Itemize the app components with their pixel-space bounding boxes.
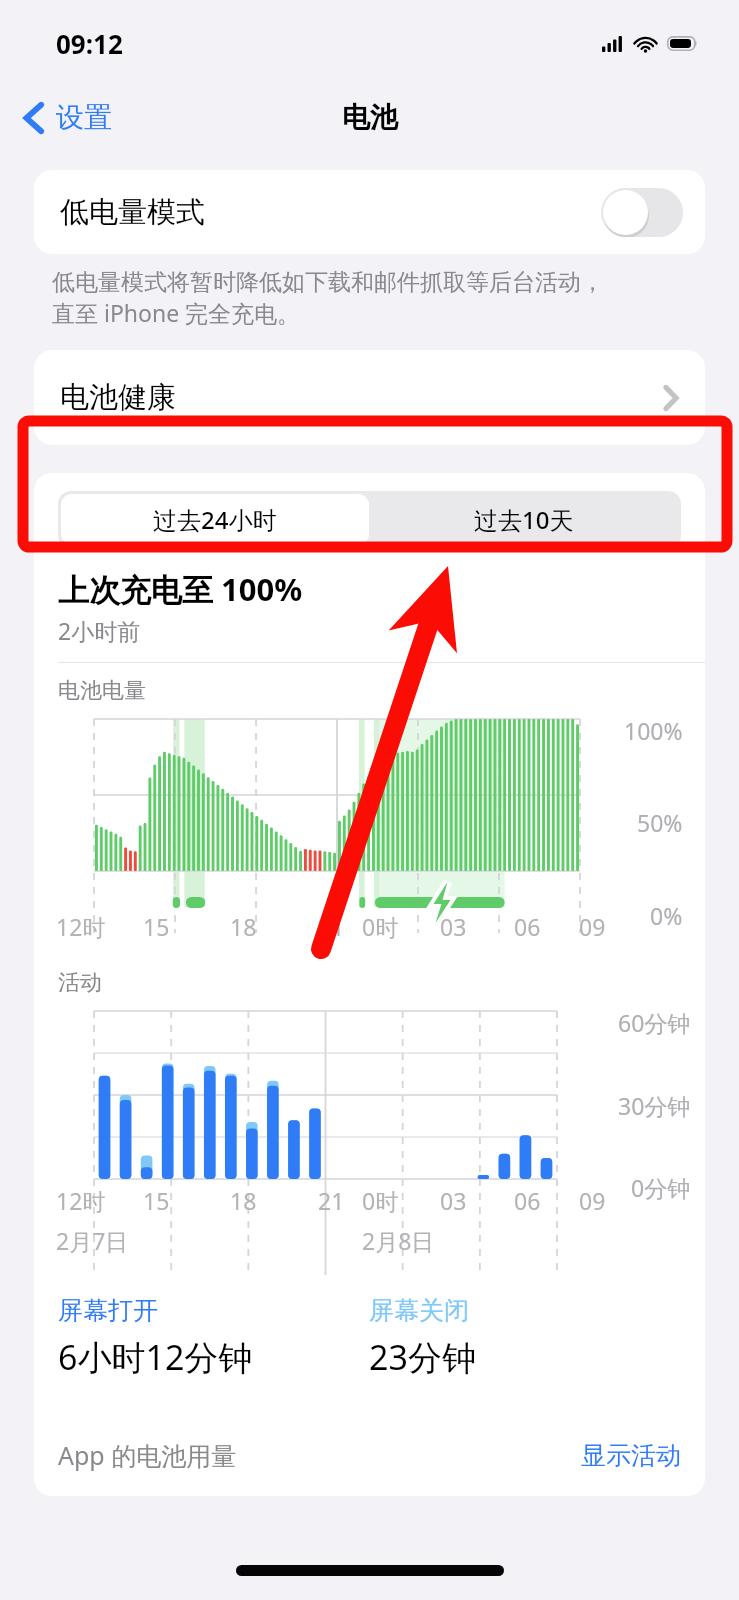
staticText: App 的电池用量 — [58, 1438, 237, 1472]
staticText: 过去24小时 — [153, 503, 277, 536]
staticText: 0% — [650, 900, 683, 931]
staticText: 电池 — [342, 100, 398, 135]
staticText: 0时 — [362, 1185, 399, 1216]
staticText: 60分钟 — [618, 1007, 691, 1038]
staticText: 显示活动 — [581, 1440, 681, 1471]
staticText: 15 — [143, 911, 170, 942]
staticText: 12时 — [56, 1185, 106, 1216]
staticText: 50% — [637, 807, 683, 838]
staticText: 100% — [624, 715, 683, 746]
staticText: 2月8日 — [362, 1225, 435, 1256]
button[interactable]: 电池健康 — [34, 350, 705, 445]
button[interactable]: 设置 — [16, 92, 120, 143]
staticText: 屏幕打开 — [58, 1295, 158, 1326]
staticText: 活动 — [58, 969, 102, 997]
staticText: 03 — [440, 1185, 467, 1216]
staticText: 18 — [230, 1185, 257, 1216]
staticText: 09 — [579, 911, 606, 942]
staticText: 2月7日 — [56, 1225, 129, 1256]
staticText: 上次充电至 100% — [58, 568, 303, 610]
staticText: 直至 iPhone 完全充电。 — [52, 297, 301, 328]
staticText: 06 — [514, 1185, 541, 1216]
staticText: 6小时12分钟 — [58, 1334, 253, 1380]
staticText: 21 — [318, 1185, 345, 1216]
staticText: 0分钟 — [631, 1172, 691, 1203]
staticText: 03 — [440, 911, 467, 942]
staticText: 低电量模式将暂时降低如下载和邮件抓取等后台活动， — [52, 268, 604, 297]
staticText: 低电量模式 — [60, 194, 205, 231]
staticText: 09 — [579, 1185, 606, 1216]
button[interactable]: 过去10天 — [369, 494, 678, 545]
staticText: 设置 — [56, 100, 112, 135]
button[interactable]: 显示活动 — [581, 1440, 681, 1471]
staticText: 电池健康 — [60, 379, 176, 416]
staticText: 过去10天 — [474, 503, 574, 536]
staticText: 15 — [143, 1185, 170, 1216]
staticText: 09:12 — [56, 26, 123, 61]
staticText: 18 — [230, 911, 257, 942]
staticText: 屏幕关闭 — [369, 1295, 469, 1326]
button[interactable]: 过去24小时 — [61, 494, 369, 545]
staticText: 2小时前 — [58, 615, 141, 646]
staticText: 12时 — [56, 911, 106, 942]
staticText: 23分钟 — [369, 1334, 476, 1380]
staticText: 0时 — [362, 911, 399, 942]
staticText: 30分钟 — [618, 1090, 691, 1121]
button[interactable]: 低电量模式 — [34, 170, 705, 254]
button[interactable] — [601, 188, 683, 237]
staticText: 电池电量 — [58, 677, 146, 705]
staticText: 21 — [318, 911, 345, 942]
staticText: 06 — [514, 911, 541, 942]
